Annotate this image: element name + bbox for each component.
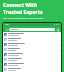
button[interactable]: Open <box>3 52 61 57</box>
other: Open <box>58 44 60 46</box>
button[interactable]: Open <box>3 57 61 62</box>
other: Open <box>58 34 60 36</box>
staticText: Find your professionals in seconds now <box>3 17 44 20</box>
other: Open <box>58 54 60 56</box>
button[interactable]: Open <box>3 67 61 72</box>
staticText: Trusted Experts <box>3 9 43 16</box>
button[interactable]: Open <box>3 62 61 67</box>
button[interactable]: Open <box>3 32 61 37</box>
button[interactable]: Open <box>3 37 61 42</box>
other: Open <box>58 64 60 66</box>
other: Open <box>58 49 60 51</box>
button[interactable]: Profile <box>56 28 59 31</box>
other: Open <box>58 69 60 71</box>
button[interactable]: Menu <box>5 28 8 31</box>
button[interactable]: Open <box>3 47 61 52</box>
other: Open <box>58 39 60 41</box>
staticText: Connect With <box>3 2 38 9</box>
other: Open <box>58 59 60 61</box>
button[interactable] <box>9 28 55 31</box>
button[interactable]: Open <box>3 42 61 47</box>
